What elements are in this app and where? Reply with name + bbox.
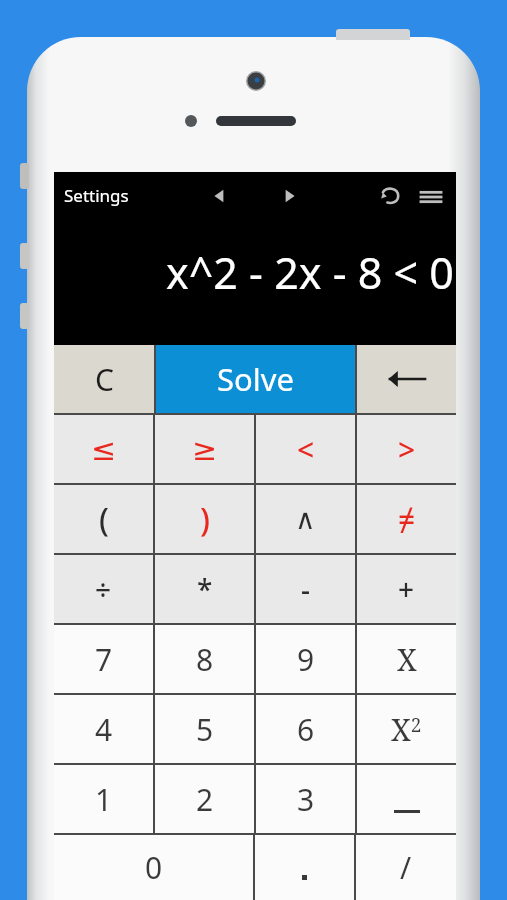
staticText: ≥ xyxy=(192,432,218,467)
button[interactable]: 8 xyxy=(155,625,254,693)
button[interactable]: ∧ xyxy=(256,485,355,553)
button[interactable]: 2 xyxy=(155,765,254,833)
button[interactable]: ≤ xyxy=(54,415,153,483)
staticText: 7 xyxy=(95,639,113,680)
button[interactable]: - xyxy=(256,555,355,623)
button[interactable]: + xyxy=(357,555,456,623)
button[interactable]: Previous xyxy=(206,182,234,210)
staticText: 6 xyxy=(297,709,315,750)
staticText: x^2 - 2x - 8 < 0 xyxy=(166,243,454,302)
staticText: Settings xyxy=(64,184,129,207)
staticText: ∧ xyxy=(295,503,316,536)
staticText: < xyxy=(297,429,315,470)
button[interactable]: Menu xyxy=(418,184,444,210)
button[interactable]: Next xyxy=(275,182,303,210)
staticText: - xyxy=(301,570,310,608)
staticText: 2 xyxy=(196,779,214,820)
staticText: ÷ xyxy=(95,570,112,608)
staticText: X2 xyxy=(391,709,422,750)
button[interactable]: ÷ xyxy=(54,555,153,623)
staticText: Solve xyxy=(217,358,295,400)
staticText: C xyxy=(95,359,114,400)
button[interactable]: X2 xyxy=(357,695,456,763)
staticText: + xyxy=(398,570,415,608)
button[interactable]: 3 xyxy=(256,765,355,833)
button[interactable]: Settings xyxy=(58,178,135,213)
staticText: 3 xyxy=(297,779,315,820)
button[interactable]: 9 xyxy=(256,625,355,693)
button[interactable]: < xyxy=(256,415,355,483)
staticText: X xyxy=(397,639,417,680)
button[interactable]: Solve xyxy=(156,345,355,413)
staticText: ) xyxy=(200,497,210,541)
staticText: 9 xyxy=(297,639,315,680)
button[interactable]: 5 xyxy=(155,695,254,763)
button[interactable]: > xyxy=(357,415,456,483)
staticText: 1 xyxy=(95,779,113,820)
button[interactable]: ( xyxy=(54,485,153,553)
button[interactable]: ≥ xyxy=(155,415,254,483)
staticText: 5 xyxy=(196,709,214,750)
staticText: ≠ xyxy=(398,499,416,540)
staticText: * xyxy=(197,570,213,608)
button[interactable]: X xyxy=(357,625,456,693)
button[interactable]: Undo xyxy=(376,181,406,211)
button[interactable]: ≠ xyxy=(357,485,456,553)
staticText: 4 xyxy=(95,709,113,750)
staticText: ( xyxy=(99,497,109,541)
button[interactable]: 1 xyxy=(54,765,153,833)
staticText: / xyxy=(400,847,412,888)
button[interactable]: Underscore xyxy=(357,765,456,833)
button[interactable]: C xyxy=(54,345,154,413)
button[interactable]: 0 xyxy=(54,835,253,900)
button[interactable]: Backspace xyxy=(357,345,456,413)
button[interactable]: / xyxy=(356,835,456,900)
staticText: > xyxy=(398,429,416,470)
staticText: 0 xyxy=(145,847,163,888)
button[interactable]: 6 xyxy=(256,695,355,763)
button[interactable]: * xyxy=(155,555,254,623)
staticText: ≤ xyxy=(91,432,117,467)
staticText: 8 xyxy=(196,639,214,680)
button[interactable]: 7 xyxy=(54,625,153,693)
button[interactable]: Decimal point xyxy=(255,835,354,900)
button[interactable]: 4 xyxy=(54,695,153,763)
button[interactable]: ) xyxy=(155,485,254,553)
